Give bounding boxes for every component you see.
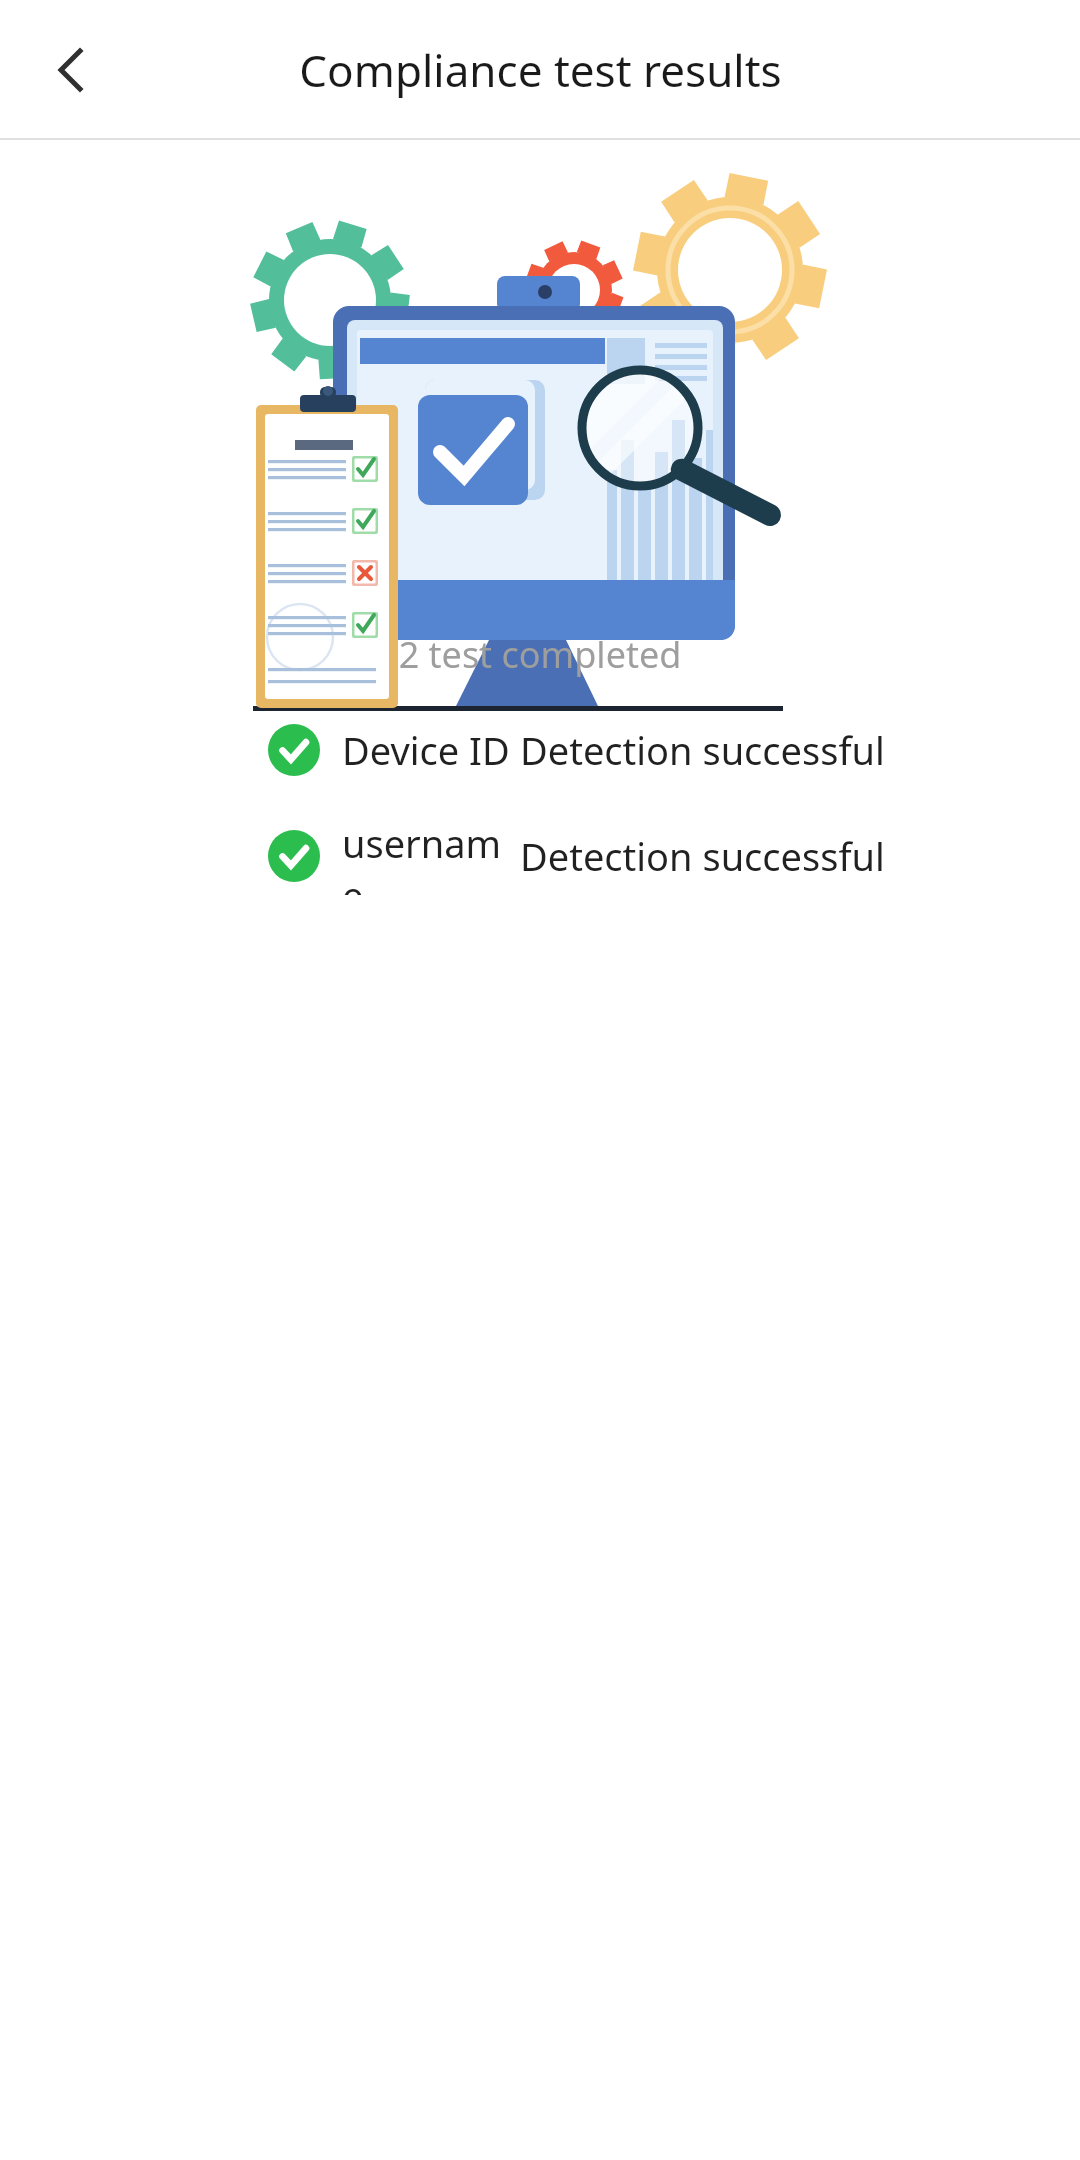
button[interactable]: Device ID: [0, 711, 1080, 789]
staticText: Detection successful: [520, 724, 885, 776]
button[interactable]: username: [0, 817, 1080, 895]
staticText: Device ID: [342, 724, 510, 776]
button[interactable]: Back: [30, 28, 114, 112]
staticText: username: [342, 817, 520, 895]
staticText: 2 test completed: [0, 630, 1080, 679]
staticText: Detection successful: [520, 830, 885, 882]
staticText: Compliance test results: [299, 40, 782, 100]
